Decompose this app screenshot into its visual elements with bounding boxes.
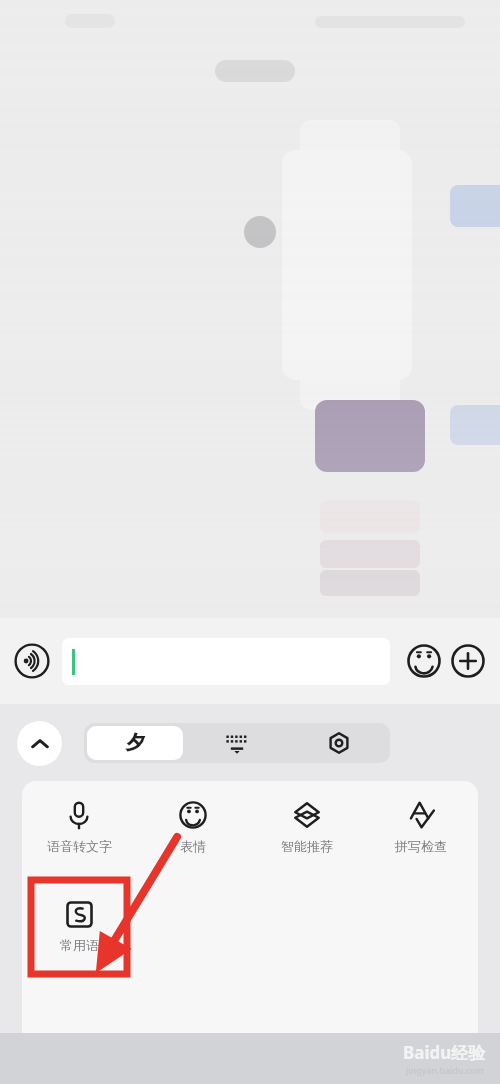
button[interactable]: 表情	[136, 797, 250, 858]
button[interactable]: 拼写检查	[364, 797, 478, 858]
button[interactable]: Pinyin	[87, 726, 183, 760]
button[interactable]: Collapse	[17, 721, 62, 766]
staticText: jingyan.baidu.com	[406, 1064, 484, 1076]
button[interactable]: 常用语	[31, 880, 127, 974]
button[interactable]: More	[446, 639, 490, 683]
staticText: 语音转文字	[47, 838, 112, 854]
button[interactable]: Emoji	[402, 639, 446, 683]
staticText: 智能推荐	[281, 838, 333, 854]
staticText: 拼写检查	[395, 838, 447, 854]
button[interactable]: Settings	[288, 723, 390, 763]
staticText: 常用语	[60, 937, 99, 953]
staticText: 表情	[180, 838, 206, 854]
staticText: Baidu经验	[403, 1041, 486, 1064]
staticText: 夕	[126, 731, 145, 755]
button[interactable]: 语音转文字	[22, 797, 136, 858]
button[interactable]: Voice input	[10, 639, 54, 683]
button[interactable]: 智能推荐	[250, 797, 364, 858]
button[interactable]	[62, 638, 390, 685]
button[interactable]: Keyboard	[186, 723, 288, 763]
